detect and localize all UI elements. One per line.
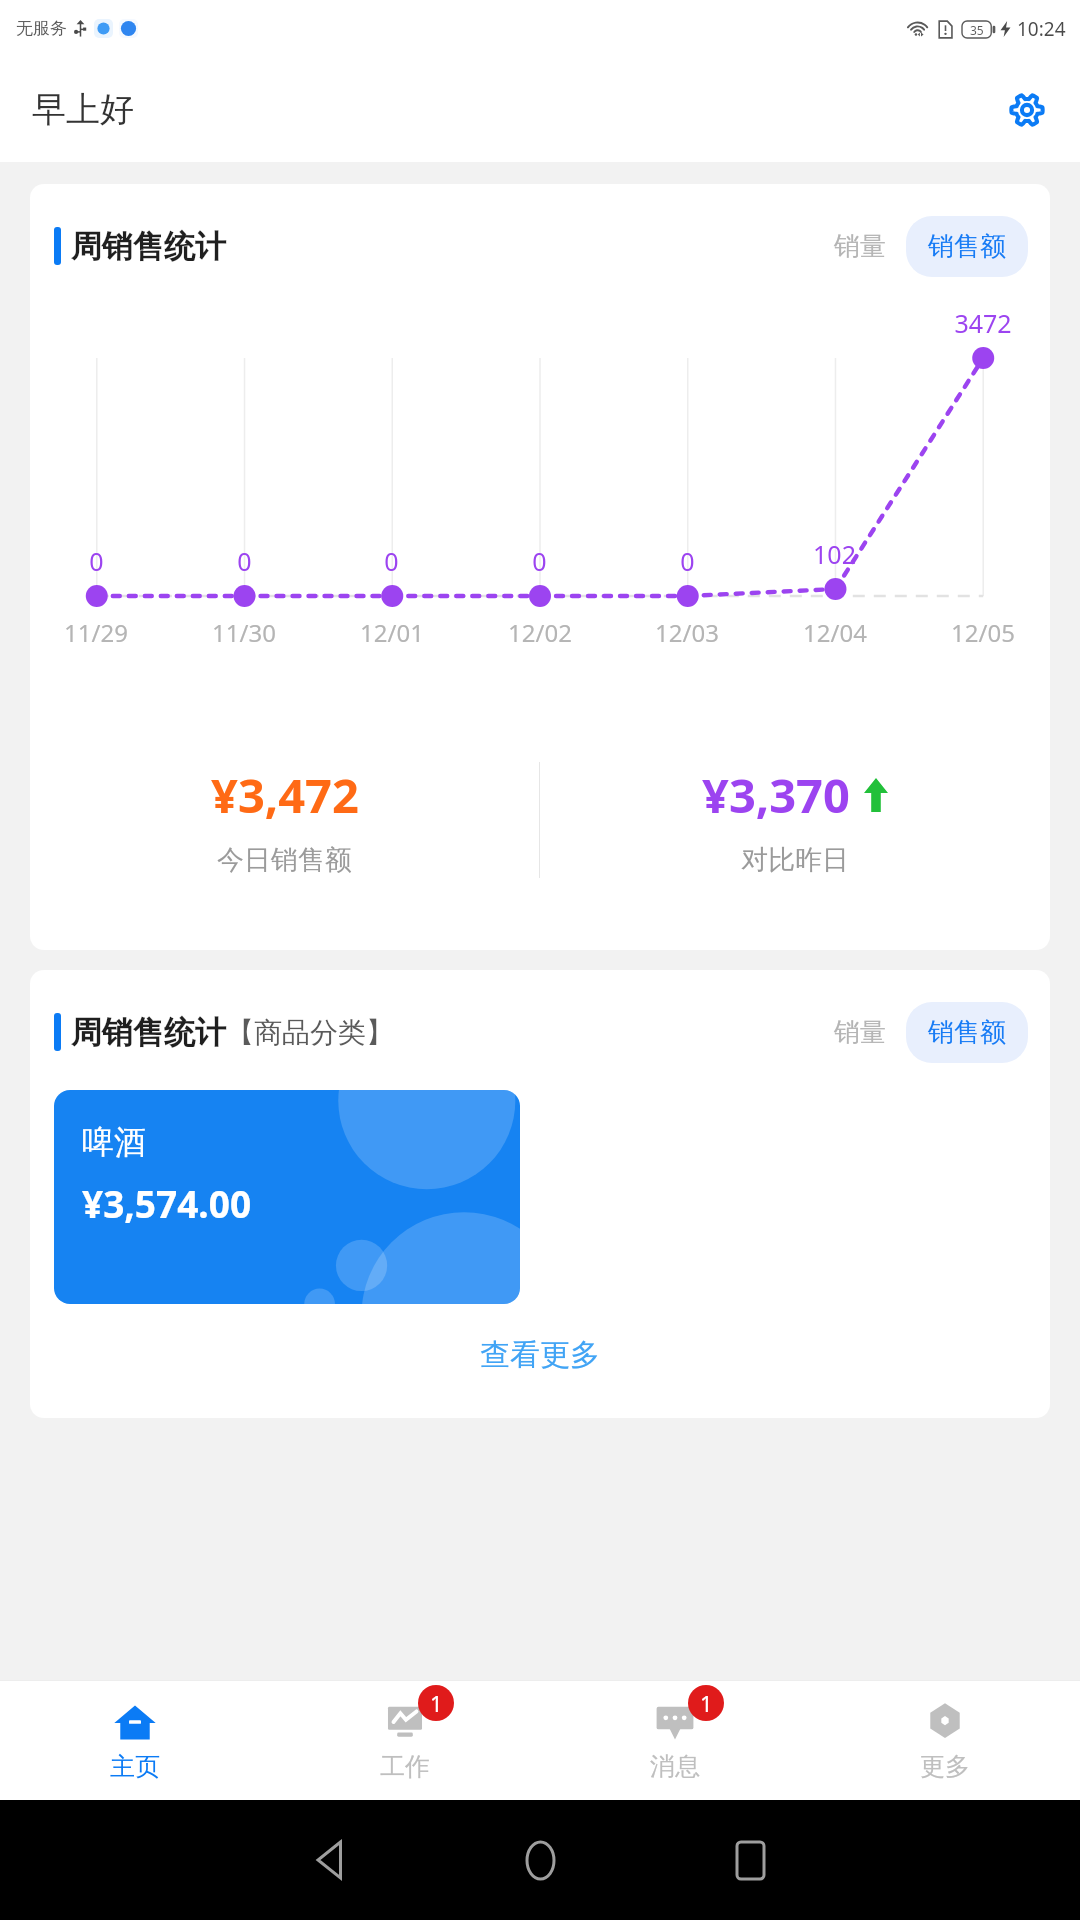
button[interactable]: Home [435,1800,645,1920]
staticText: 11/29 [64,616,128,649]
staticText: 啤酒 [82,1122,146,1162]
button[interactable]: 查看更多 [30,1328,1050,1382]
staticText: 无服务 [16,18,67,39]
staticText: 查看更多 [480,1336,600,1374]
staticText: 0 [532,544,547,578]
staticText: 10:24 [1017,16,1066,42]
staticText: 0 [89,544,104,578]
staticText: 0 [237,544,252,578]
staticText: 0 [680,544,695,578]
staticText: 更多 [920,1751,970,1782]
staticText: 早上好 [32,88,134,131]
staticText: 12/05 [951,616,1015,649]
button[interactable]: 1 [540,1680,810,1800]
button[interactable]: 主页 [0,1680,270,1800]
staticText: 周销售统计 [71,1013,226,1052]
staticText: 周销售统计 [71,227,226,266]
button[interactable]: 啤酒 [54,1090,520,1304]
button[interactable]: Recent apps [645,1800,855,1920]
staticText: 35 [970,22,984,38]
button[interactable]: Settings [1002,85,1052,135]
staticText: ¥3,574.00 [82,1178,252,1228]
button[interactable]: 销量 [824,218,896,275]
button[interactable]: 更多 [810,1680,1080,1800]
staticText: 消息 [650,1751,700,1782]
button[interactable]: 1 [270,1680,540,1800]
staticText: 销售额 [928,230,1006,263]
button[interactable]: Back [225,1800,435,1920]
staticText: 1 [700,1688,713,1718]
staticText: 12/01 [360,616,424,649]
staticText: ¥3,472 [211,763,359,827]
staticText: 102 [813,537,856,571]
staticText: 主页 [110,1751,160,1782]
staticText: 今日销售额 [217,843,352,877]
staticText: 对比昨日 [741,843,849,877]
staticText: 12/03 [655,616,719,649]
staticText: 销量 [834,230,886,263]
staticText: 1 [430,1688,443,1718]
staticText: 12/04 [803,616,867,649]
staticText: 3472 [954,306,1012,340]
staticText: 12/02 [508,616,572,649]
button[interactable]: 销量 [824,1004,896,1061]
staticText: 0 [384,544,399,578]
staticText: ¥3,370 [702,763,850,827]
staticText: 工作 [380,1751,430,1782]
staticText: 11/30 [212,616,276,649]
button[interactable]: 销售额 [906,1002,1028,1063]
button[interactable]: 销售额 [906,216,1028,277]
staticText: 销量 [834,1016,886,1049]
staticText: 销售额 [928,1016,1006,1049]
staticText: 【商品分类】 [226,1015,394,1050]
